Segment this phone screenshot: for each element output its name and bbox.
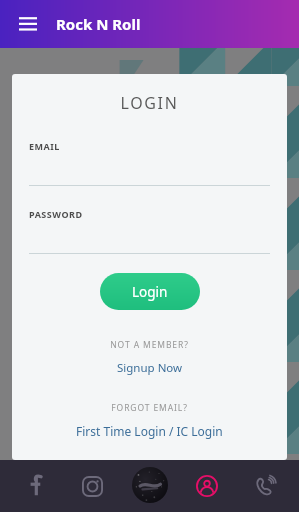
button[interactable]: Home [127, 463, 173, 509]
button[interactable]: Call us [242, 463, 288, 509]
staticText: FORGOT EMAIL? [12, 402, 287, 414]
staticText: Rock N Roll [56, 14, 141, 34]
staticText: Signup Now [117, 360, 183, 376]
button[interactable]: Open navigation menu [12, 8, 44, 40]
staticText: PASSWORD [29, 208, 83, 220]
button[interactable]: First Time Login / IC Login [68, 421, 231, 441]
staticText: First Time Login / IC Login [76, 423, 223, 439]
staticText: NOT A MEMBER? [12, 339, 287, 351]
staticText: EMAIL [29, 140, 60, 152]
button[interactable]: Instagram [69, 463, 115, 509]
staticText: Login [132, 283, 168, 301]
button[interactable]: Facebook [12, 463, 58, 509]
button[interactable]: Signup Now [109, 358, 191, 378]
staticText: LOGIN [12, 92, 287, 114]
button[interactable]: Login [100, 273, 200, 310]
button[interactable]: Profile [184, 463, 230, 509]
